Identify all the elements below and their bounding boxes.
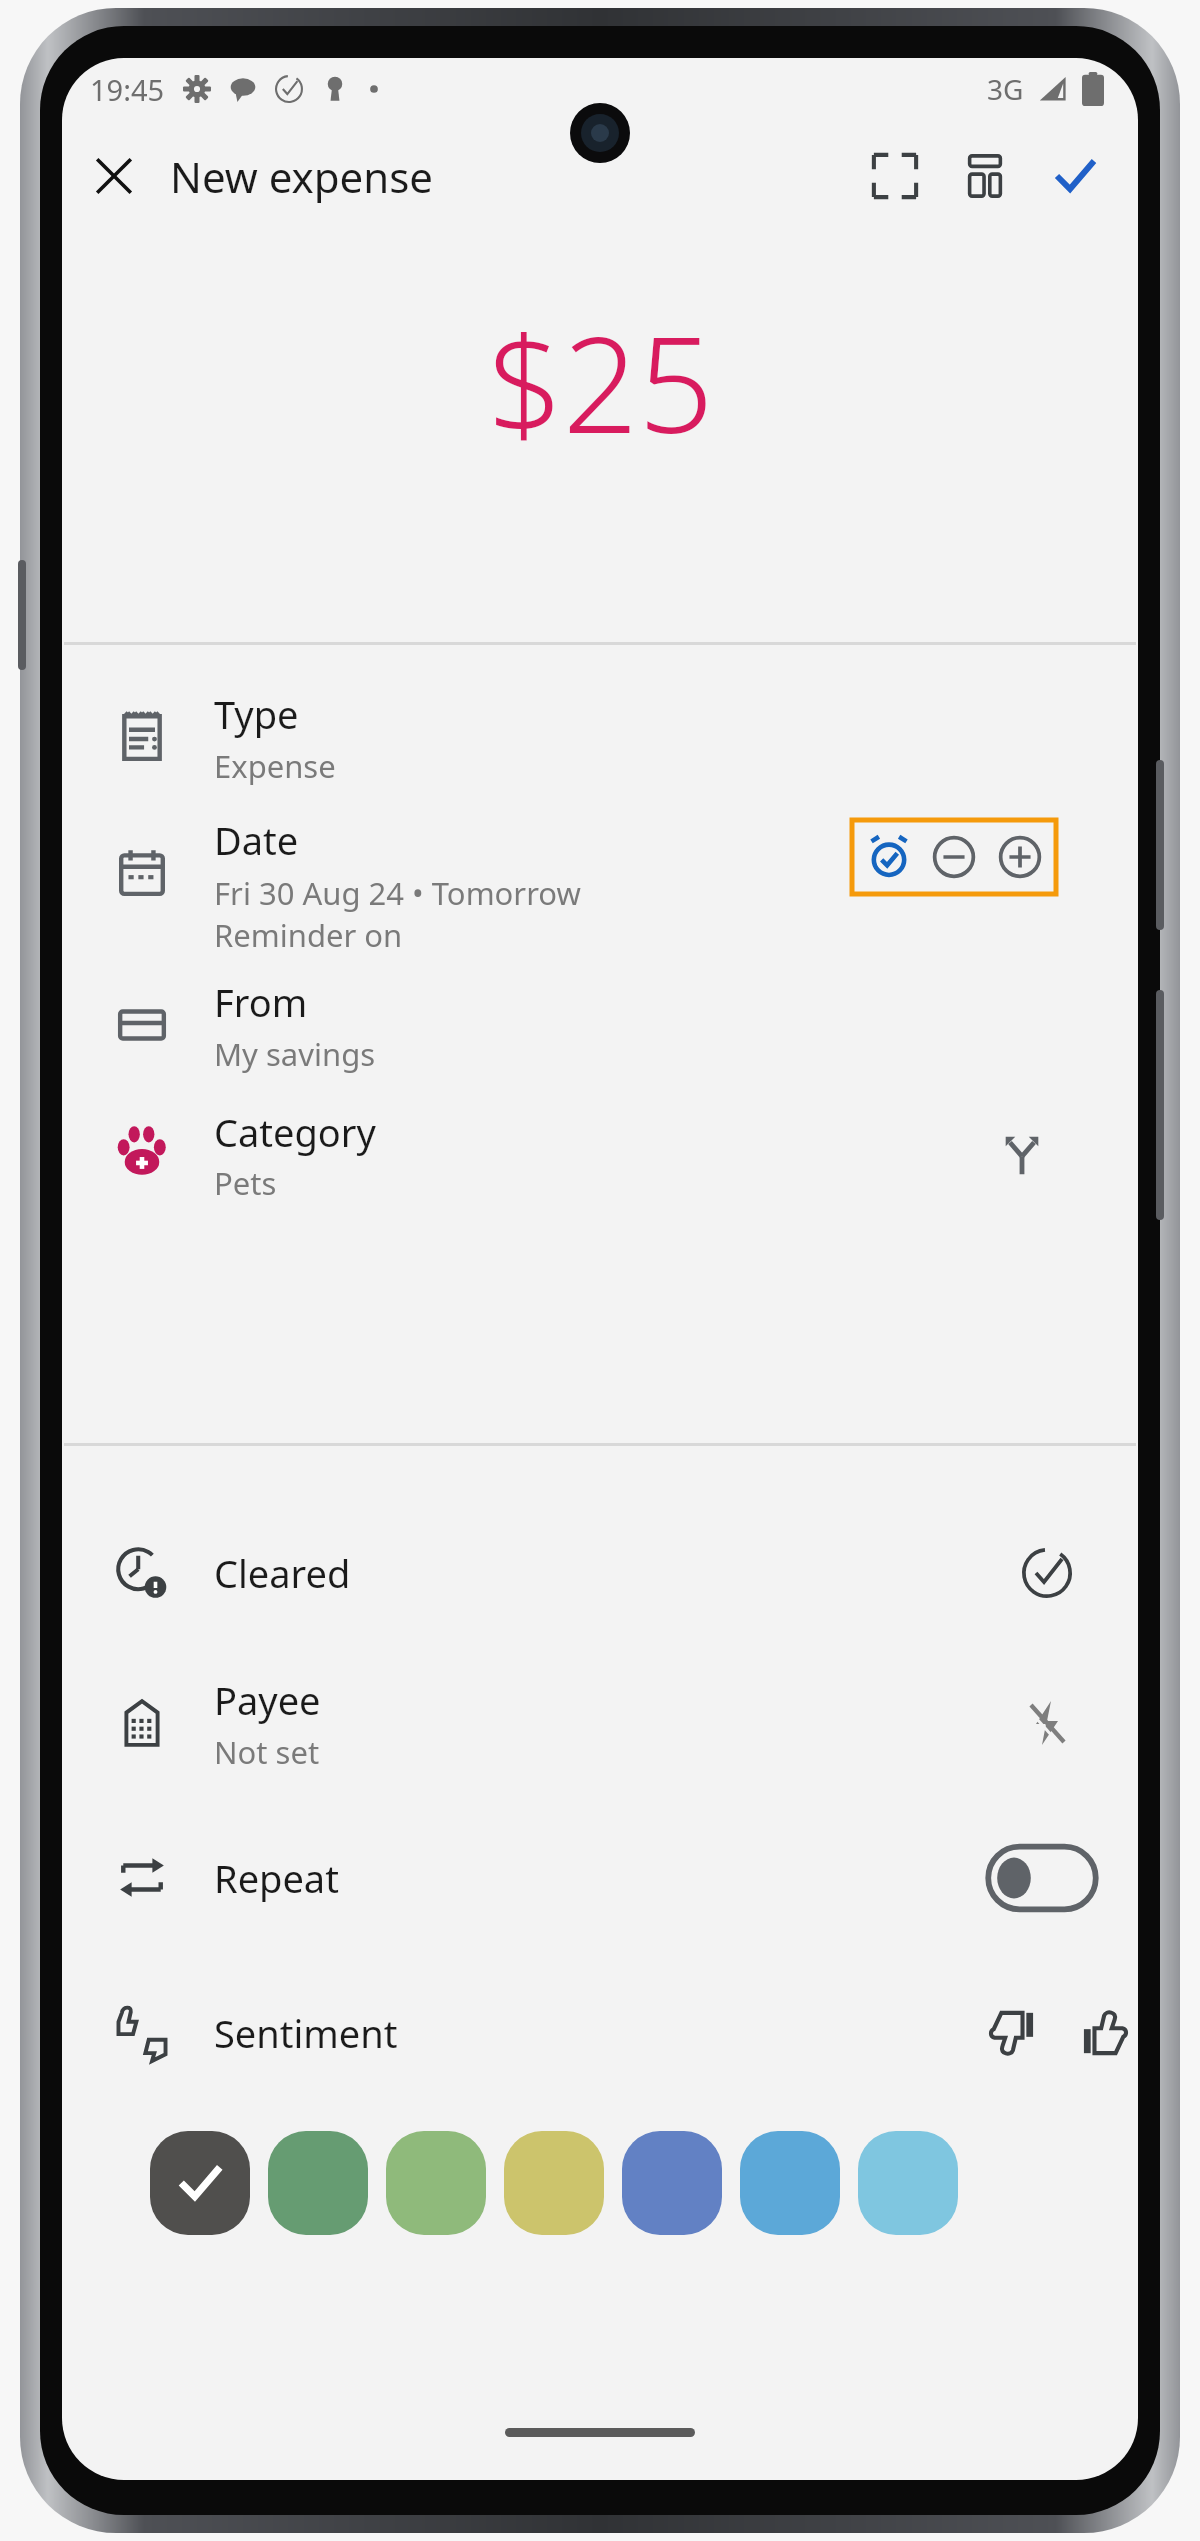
button[interactable]: Thumb down — [967, 1958, 1055, 2108]
staticText: Payee — [214, 1674, 321, 1726]
button[interactable]: Colour 3 — [386, 2131, 486, 2235]
button[interactable]: Sentiment — [62, 1958, 1138, 2108]
button[interactable]: Layout — [940, 131, 1030, 221]
button[interactable]: Type — [62, 678, 1138, 796]
staticText: 3G — [987, 70, 1024, 108]
button[interactable]: Colour 6 — [740, 2131, 840, 2235]
button[interactable]: Payee — [62, 1648, 1138, 1798]
button[interactable]: Thumb up — [1062, 1958, 1138, 2108]
button[interactable]: Colour 5 — [622, 2131, 722, 2235]
button[interactable]: Close — [72, 134, 156, 218]
staticText: Cleared — [214, 1547, 351, 1599]
staticText: Pets — [214, 1162, 277, 1204]
staticText: Reminder on — [214, 914, 403, 956]
staticText: Date — [214, 814, 299, 866]
button[interactable]: Save — [1030, 131, 1120, 221]
button[interactable]: $25 — [62, 232, 1138, 532]
staticText: Sentiment — [214, 2007, 398, 2059]
button[interactable]: Colour 2 — [268, 2131, 368, 2235]
button[interactable]: Split — [982, 1114, 1062, 1194]
button[interactable]: Date — [62, 796, 1138, 966]
staticText: New expense — [170, 148, 434, 205]
button[interactable]: Colour 4 — [504, 2131, 604, 2235]
button[interactable]: Colour 7 — [858, 2131, 958, 2235]
staticText: My savings — [214, 1033, 376, 1075]
staticText: Not set — [214, 1731, 320, 1773]
button[interactable]: Cleared — [62, 1498, 1138, 1648]
staticText: Type — [214, 688, 299, 740]
button[interactable]: Flash off — [1002, 1648, 1092, 1798]
button[interactable]: Colour 1 — [150, 2131, 250, 2235]
button[interactable]: Repeat — [62, 1803, 1138, 1953]
staticText: Repeat — [214, 1852, 339, 1904]
staticText: Expense — [214, 745, 336, 787]
button[interactable]: From — [62, 966, 1138, 1084]
staticText: $25 — [487, 292, 714, 472]
staticText: Fri 30 Aug 24 • Tomorrow — [214, 872, 581, 914]
staticText: From — [214, 976, 308, 1028]
button[interactable]: Decrease reminder — [925, 828, 983, 886]
button[interactable]: Category — [62, 1084, 1138, 1214]
button[interactable]: Repeat toggle — [967, 1803, 1117, 1953]
staticText: 19:45 — [90, 70, 165, 109]
staticText: Category — [214, 1106, 376, 1158]
button[interactable]: Reminder — [860, 828, 918, 886]
button[interactable]: Increase reminder — [991, 828, 1049, 886]
button[interactable]: Cleared — [1002, 1498, 1092, 1648]
button[interactable]: Scan — [850, 131, 940, 221]
